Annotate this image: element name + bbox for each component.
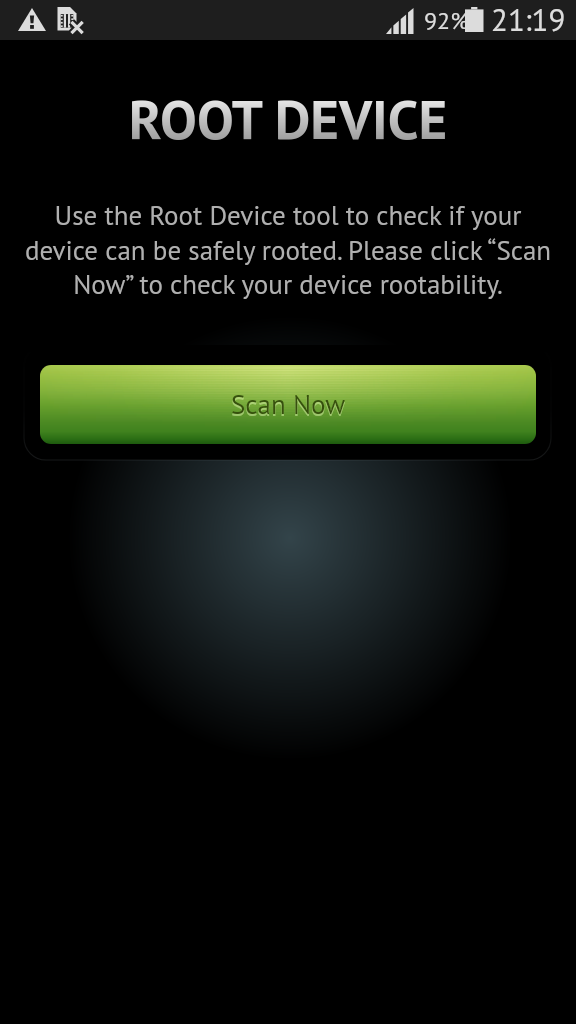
button[interactable]: Scan Now (40, 365, 536, 444)
staticText: 21:19 (491, 0, 566, 39)
staticText: ROOT DEVICE (0, 83, 576, 154)
staticText: Scan Now (231, 389, 346, 424)
staticText: 92% (424, 5, 469, 36)
staticText: Scan Now (231, 387, 346, 422)
staticText: Use the Root Device tool to check if you… (0, 198, 576, 301)
